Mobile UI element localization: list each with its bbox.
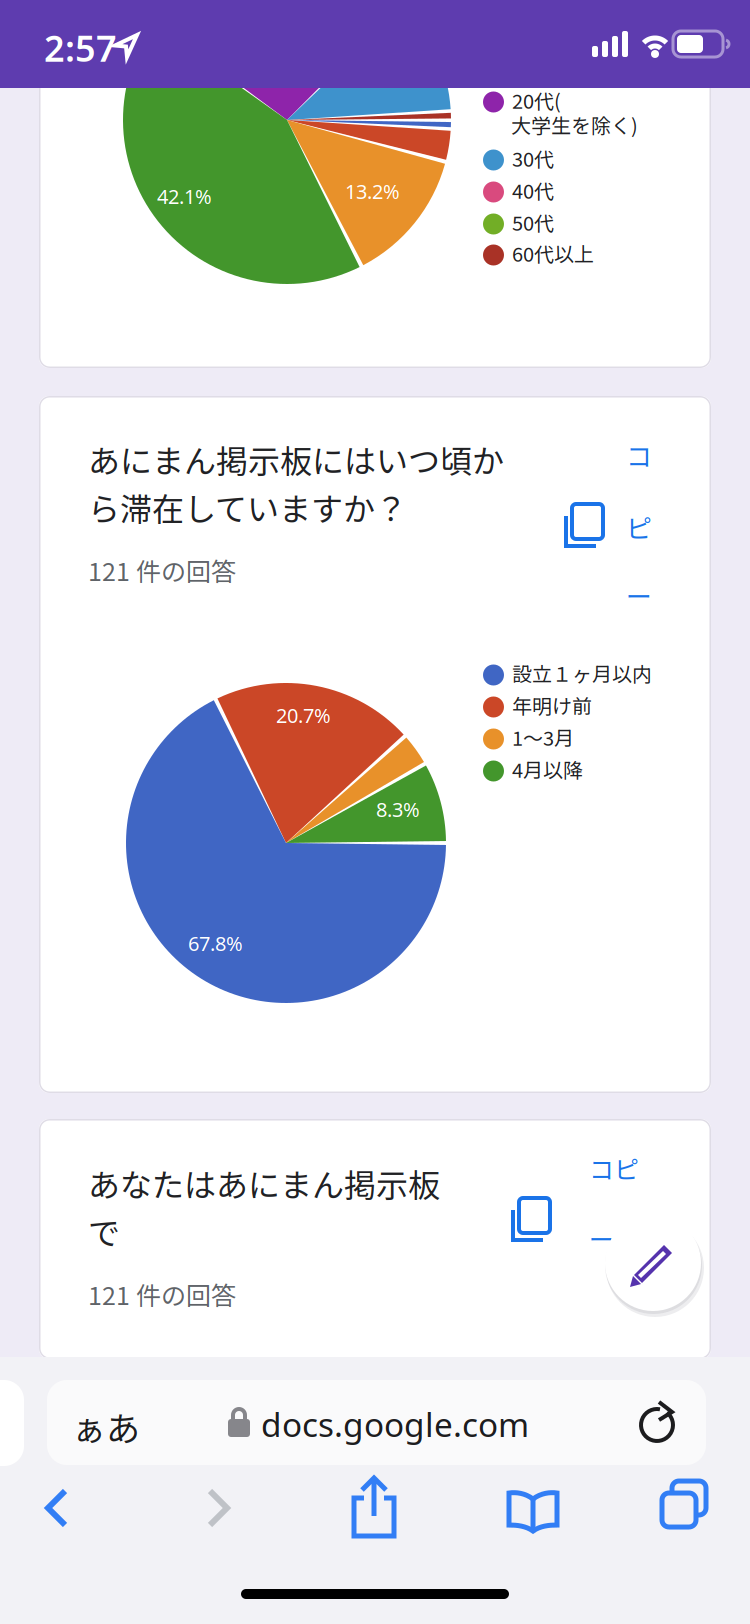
staticText: 121 件の回答 <box>88 1276 236 1312</box>
staticText: ぁあ <box>72 1402 140 1451</box>
staticText: ー <box>589 1220 614 1256</box>
staticText: 30代 <box>512 143 554 172</box>
button[interactable]: コピー <box>0 0 142 200</box>
button[interactable]: 戻る <box>0 1357 58 1419</box>
staticText: 2:57 <box>44 24 117 72</box>
staticText: ー <box>626 576 652 614</box>
staticText: ピ <box>626 508 652 546</box>
button[interactable]: フォームを編集 <box>0 0 106 106</box>
button[interactable]: ブックマーク <box>0 1357 60 1423</box>
staticText: 67.8% <box>188 930 243 957</box>
staticText: 20代( <box>512 85 561 114</box>
staticText: 40代 <box>512 175 554 204</box>
staticText: 設立１ヶ月以内 <box>512 658 652 687</box>
staticText: で <box>88 1208 120 1254</box>
staticText: 4月以降 <box>512 754 583 783</box>
button[interactable]: アドレスバー <box>0 1357 659 1442</box>
staticText: あにまん掲示板にはいつ頃か <box>88 436 504 482</box>
staticText: 60代以上 <box>512 238 594 267</box>
staticText: 20.7% <box>276 702 331 729</box>
button[interactable]: 共有 <box>0 1357 62 1437</box>
staticText: 42.1% <box>157 183 212 210</box>
staticText: 年明け前 <box>512 690 592 719</box>
staticText: 大学生を除く) <box>511 110 638 139</box>
staticText: 1〜3月 <box>512 722 574 751</box>
staticText: あなたはあにまん掲示板 <box>88 1160 440 1206</box>
staticText: 121 件の回答 <box>88 552 236 588</box>
staticText: コ <box>626 436 652 474</box>
staticText: 50代 <box>512 207 554 236</box>
button[interactable]: 進む <box>0 1357 58 1419</box>
staticText: docs.google.com <box>261 1402 529 1446</box>
button[interactable]: コピー <box>0 0 190 150</box>
staticText: ら滞在していますか？ <box>88 484 407 530</box>
staticText: 8.3% <box>376 796 420 823</box>
staticText: コピ <box>589 1150 639 1186</box>
button[interactable]: タブ <box>0 1357 58 1423</box>
staticText: 13.2% <box>345 178 400 205</box>
